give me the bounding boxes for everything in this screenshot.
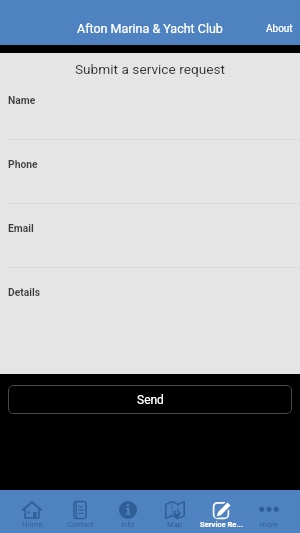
staticText: About (266, 23, 293, 35)
staticText: Afton Marina & Yacht Club (77, 21, 223, 36)
staticText: Send (137, 393, 164, 407)
staticText: Map (167, 520, 183, 529)
button[interactable]: Email (0, 213, 300, 277)
staticText: Contact (67, 520, 94, 529)
button[interactable]: Service Re... (198, 490, 245, 533)
button[interactable]: About (254, 18, 300, 40)
staticText: Name (8, 94, 36, 106)
button[interactable]: Info (104, 490, 151, 533)
button[interactable]: Home (8, 490, 56, 533)
button[interactable]: Contact (56, 490, 104, 533)
staticText: Info (121, 520, 135, 529)
staticText: Service Re... (200, 520, 243, 529)
staticText: Submit a service request (0, 61, 300, 77)
button[interactable]: Phone (0, 149, 300, 213)
button[interactable]: Name (0, 85, 300, 149)
button[interactable]: Details (0, 277, 300, 341)
button[interactable]: more (245, 490, 292, 533)
staticText: Email (8, 222, 34, 234)
staticText: Phone (8, 158, 38, 170)
staticText: Home (22, 520, 43, 529)
staticText: more (260, 520, 278, 529)
button[interactable]: Send (8, 385, 292, 414)
staticText: Details (8, 286, 40, 298)
button[interactable]: Map (151, 490, 198, 533)
